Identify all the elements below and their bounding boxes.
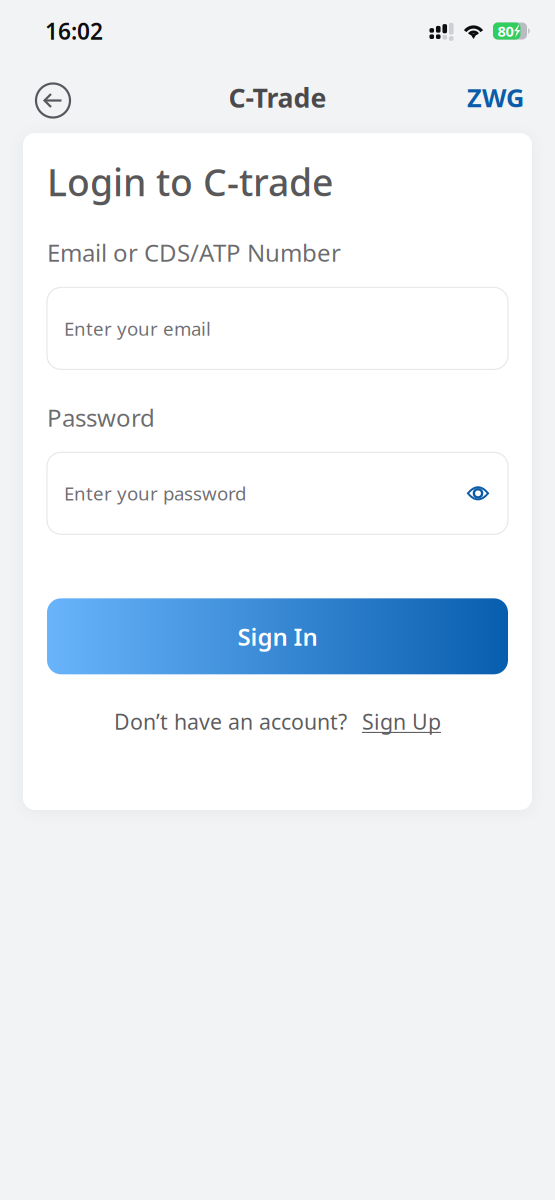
staticText: ZWG	[467, 81, 524, 114]
button[interactable]: Sign In	[47, 598, 508, 674]
staticText: Sign In	[237, 620, 317, 652]
button[interactable]: Sign Up	[362, 707, 441, 736]
staticText: Don’t have an account?	[114, 707, 347, 736]
staticText: Password	[47, 401, 155, 433]
button[interactable]: ZWG	[461, 71, 530, 124]
staticText: Enter your email	[64, 316, 211, 341]
staticText: Enter your password	[64, 481, 246, 506]
staticText: 80	[497, 21, 513, 41]
staticText: 16:02	[45, 16, 103, 46]
staticText: Login to C-trade	[47, 157, 333, 207]
staticText: Sign Up	[362, 707, 441, 736]
button[interactable]: Show password	[465, 484, 491, 503]
staticText: Email or CDS/ATP Number	[47, 237, 341, 268]
staticText: C-Trade	[228, 80, 326, 115]
button[interactable]: Back	[27, 71, 79, 123]
